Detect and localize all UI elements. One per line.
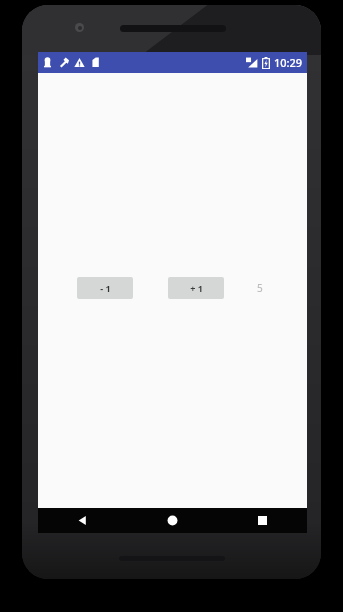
button[interactable]: Recent apps xyxy=(217,508,307,533)
button[interactable]: - 1 xyxy=(77,277,133,299)
button[interactable]: + 1 xyxy=(168,277,224,299)
staticText: 10:29 xyxy=(274,55,303,70)
button[interactable]: Home xyxy=(127,508,217,533)
staticText: - 1 xyxy=(100,282,111,294)
button[interactable]: Back xyxy=(38,508,127,533)
staticText: + 1 xyxy=(190,282,203,294)
staticText: 5 xyxy=(257,281,263,295)
